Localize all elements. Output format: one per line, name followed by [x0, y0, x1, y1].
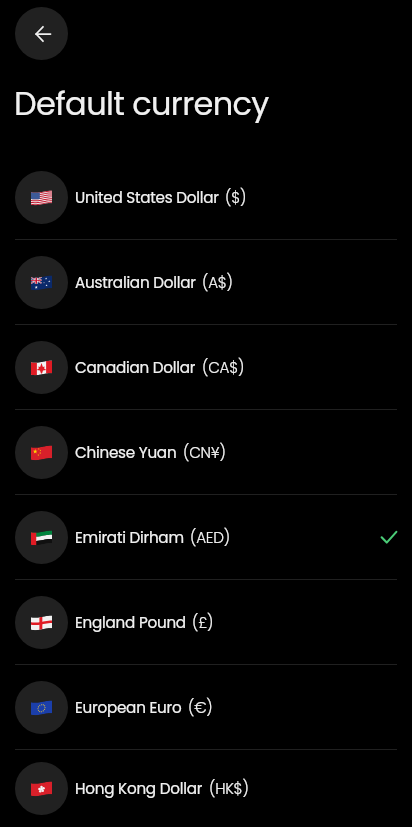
button[interactable]: European Euro: [0, 665, 412, 749]
staticText: (CN¥): [183, 442, 226, 463]
staticText: (AED): [190, 527, 230, 548]
staticText: Australian Dollar: [75, 272, 196, 293]
staticText: European Euro: [75, 697, 182, 718]
button[interactable]: Hong Kong Dollar: [0, 750, 412, 827]
staticText: Hong Kong Dollar: [75, 778, 203, 799]
staticText: (A$): [202, 272, 233, 293]
staticText: (CA$): [202, 357, 245, 378]
staticText: United States Dollar: [75, 187, 219, 208]
staticText: Chinese Yuan: [75, 442, 177, 463]
button[interactable]: England Pound: [0, 580, 412, 664]
staticText: (£): [192, 612, 214, 633]
button[interactable]: Chinese Yuan: [0, 410, 412, 494]
staticText: Canadian Dollar: [75, 357, 196, 378]
staticText: Default currency: [14, 81, 269, 126]
staticText: (HK$): [209, 778, 249, 799]
button[interactable]: Back: [15, 7, 68, 60]
staticText: (€): [188, 697, 213, 718]
button[interactable]: Emirati Dirham: [0, 495, 412, 579]
staticText: Emirati Dirham: [75, 527, 184, 548]
button[interactable]: United States Dollar: [0, 155, 412, 239]
staticText: England Pound: [75, 612, 186, 633]
button[interactable]: Canadian Dollar: [0, 325, 412, 409]
staticText: ($): [225, 187, 247, 208]
button[interactable]: Australian Dollar: [0, 240, 412, 324]
